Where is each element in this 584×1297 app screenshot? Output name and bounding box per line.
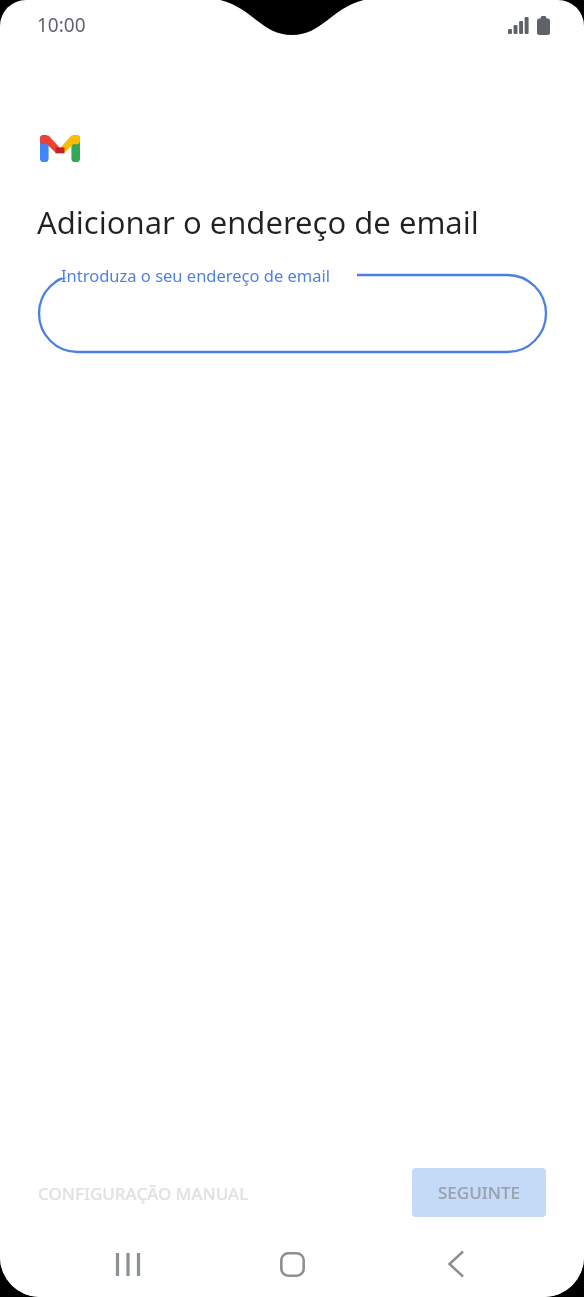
button[interactable]: Home <box>262 1234 322 1294</box>
staticText: CONFIGURAÇÃO MANUAL <box>38 1182 249 1205</box>
button[interactable]: Back <box>426 1234 486 1294</box>
button[interactable]: Introduza o seu endereço de email <box>0 263 584 359</box>
staticText: Adicionar o endereço de email <box>37 201 479 243</box>
staticText: SEGUINTE <box>438 1181 520 1204</box>
button[interactable]: CONFIGURAÇÃO MANUAL <box>22 1170 265 1217</box>
button[interactable]: Recent apps <box>98 1234 158 1294</box>
button[interactable]: SEGUINTE <box>412 1168 546 1217</box>
staticText: 10:00 <box>37 12 86 38</box>
staticText: Introduza o seu endereço de email <box>61 264 331 286</box>
